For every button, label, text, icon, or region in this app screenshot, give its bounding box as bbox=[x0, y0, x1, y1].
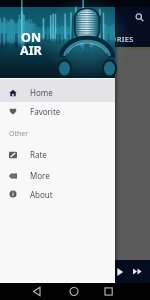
button[interactable]: CATEGORIES bbox=[86, 34, 134, 44]
button[interactable]: Home bbox=[0, 81, 115, 104]
button[interactable]: More bbox=[0, 165, 115, 186]
staticText: Rate bbox=[30, 149, 47, 160]
button[interactable]: Favorite bbox=[0, 101, 115, 121]
button[interactable]: Rate bbox=[0, 144, 115, 165]
staticText: Home bbox=[30, 87, 53, 98]
staticText: About bbox=[30, 189, 53, 200]
staticText: More bbox=[30, 170, 50, 181]
staticText: Other bbox=[9, 129, 29, 139]
staticText: Favorite bbox=[30, 106, 61, 117]
staticText: AIR bbox=[20, 42, 42, 59]
button[interactable]: Fast forward bbox=[130, 264, 145, 279]
button[interactable]: Search bbox=[134, 12, 145, 23]
button[interactable]: Play bbox=[112, 264, 127, 279]
button[interactable]: About bbox=[0, 184, 115, 204]
staticText: ON bbox=[21, 29, 42, 46]
staticText: CATEGORIES bbox=[86, 34, 134, 44]
